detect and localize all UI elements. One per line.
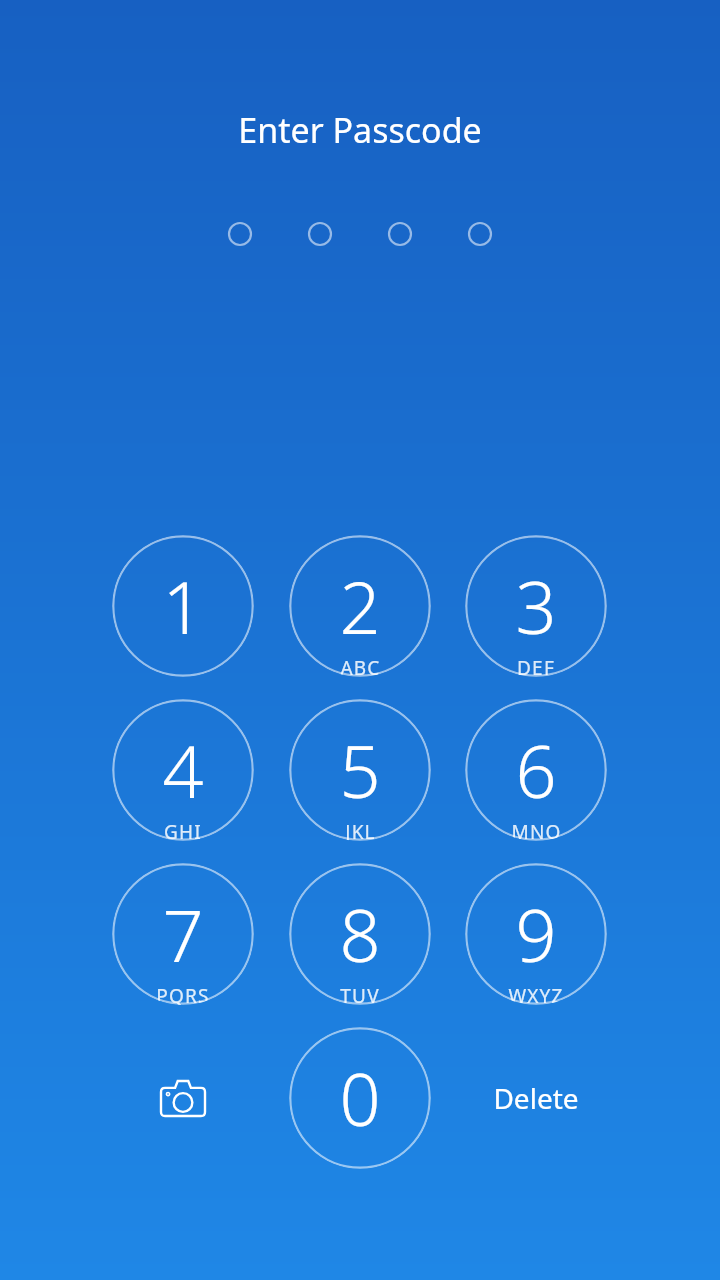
staticText: 4 <box>162 721 204 819</box>
staticText: 8 <box>339 885 381 983</box>
staticText: 0 <box>339 1049 381 1147</box>
staticText: WXYZ <box>508 983 564 1005</box>
button[interactable]: 0 <box>289 1027 431 1169</box>
staticText: 7 <box>162 885 204 983</box>
button[interactable]: 3 <box>465 535 607 677</box>
staticText: 2 <box>339 557 381 655</box>
button[interactable]: 4 <box>112 699 254 841</box>
button[interactable]: Open camera <box>128 1043 238 1153</box>
button[interactable]: 6 <box>465 699 607 841</box>
staticText: 5 <box>339 721 381 819</box>
staticText: Delete <box>493 1079 579 1117</box>
button[interactable]: 5 <box>289 699 431 841</box>
staticText: TUV <box>340 983 380 1005</box>
button[interactable]: 2 <box>289 535 431 677</box>
staticText: Enter Passcode <box>0 107 720 153</box>
staticText: ABC <box>340 655 381 677</box>
staticText: MNO <box>511 819 562 841</box>
staticText: PQRS <box>156 983 210 1005</box>
staticText: GHI <box>164 819 202 841</box>
staticText: 6 <box>515 721 557 819</box>
button[interactable]: 1 <box>112 535 254 677</box>
button[interactable]: 9 <box>465 863 607 1005</box>
button[interactable]: Delete <box>461 1058 611 1138</box>
staticText: JKL <box>345 819 376 841</box>
staticText: DEF <box>517 655 555 677</box>
button[interactable]: 8 <box>289 863 431 1005</box>
staticText: 3 <box>515 557 557 655</box>
staticText: 9 <box>515 885 557 983</box>
staticText: 1 <box>162 557 204 655</box>
button[interactable]: 7 <box>112 863 254 1005</box>
